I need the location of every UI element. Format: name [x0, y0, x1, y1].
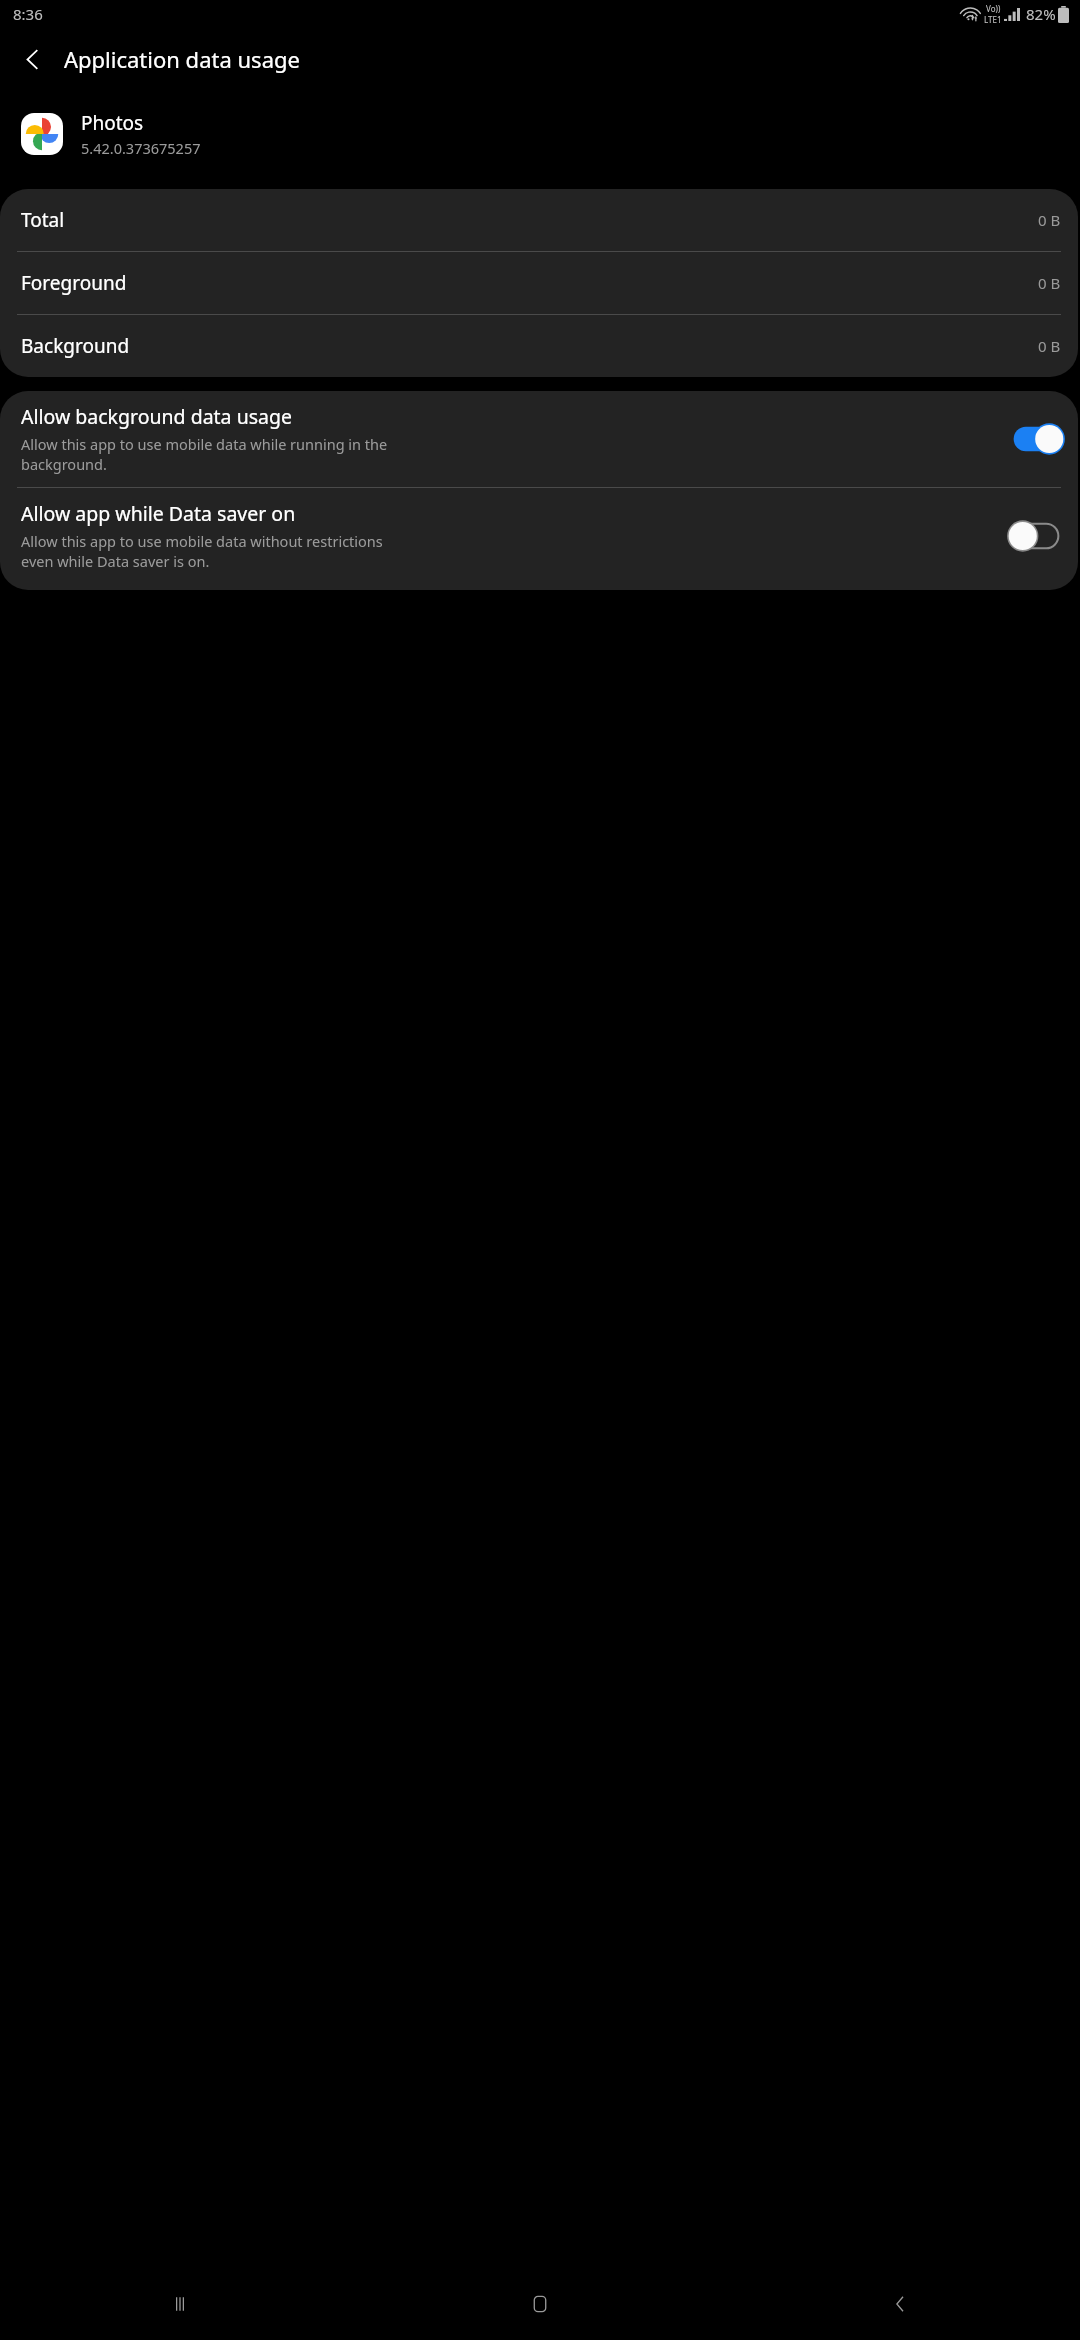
staticText: 8:36: [13, 4, 43, 24]
staticText: 0 B: [1038, 336, 1061, 356]
button[interactable]: Total: [0, 189, 1078, 251]
staticText: Photos: [81, 110, 144, 136]
button[interactable]: Back: [8, 35, 56, 83]
staticText: Vo)): [986, 3, 1001, 14]
staticText: 5.42.0.373675257: [81, 138, 201, 158]
staticText: LTE1: [984, 14, 1002, 25]
button[interactable]: Toggle on: [1010, 422, 1062, 456]
button[interactable]: Toggle off: [1010, 519, 1062, 553]
button[interactable]: Background: [0, 315, 1078, 377]
button[interactable]: Foreground: [0, 252, 1078, 314]
staticText: Background: [21, 333, 130, 359]
staticText: 82%: [1026, 4, 1056, 24]
staticText: Total: [21, 207, 65, 233]
staticText: 0 B: [1038, 210, 1061, 230]
button[interactable]: Back: [720, 2268, 1080, 2340]
staticText: Application data usage: [64, 44, 300, 74]
staticText: Allow app while Data saver on: [21, 500, 296, 527]
button[interactable]: Allow background data usage: [0, 403, 1078, 475]
button[interactable]: Allow app while Data saver on: [0, 500, 1078, 572]
button[interactable]: Recents: [0, 2268, 360, 2340]
staticText: 0 B: [1038, 273, 1061, 293]
staticText: Foreground: [21, 270, 127, 296]
button[interactable]: Home: [360, 2268, 720, 2340]
staticText: Allow background data usage: [21, 403, 292, 430]
staticText: Allow this app to use mobile data while …: [21, 434, 388, 475]
staticText: Allow this app to use mobile data withou…: [21, 531, 383, 572]
